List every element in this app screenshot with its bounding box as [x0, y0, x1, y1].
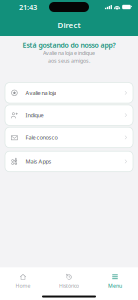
button[interactable]: Indique [5, 105, 133, 125]
staticText: 21:43 [19, 2, 37, 12]
staticText: Menu [108, 282, 122, 289]
staticText: Fale conosco [25, 134, 57, 141]
button[interactable]: Home [0, 273, 46, 289]
staticText: Mais Apps [25, 158, 51, 165]
button[interactable]: Histórico [46, 273, 92, 289]
staticText: Home [15, 282, 30, 289]
staticText: Avalie na loja [25, 89, 56, 97]
button[interactable]: Fale conosco [5, 127, 133, 148]
button[interactable]: Avalie na loja [5, 83, 133, 103]
staticText: Histórico [59, 282, 79, 289]
button[interactable]: Menu [92, 273, 138, 289]
staticText: Está gostando do nosso app? [22, 40, 115, 50]
button[interactable]: Mais Apps [5, 151, 133, 172]
staticText: Direct [57, 20, 80, 30]
staticText: Indique [25, 111, 43, 119]
staticText: Avalie na loja e indique [43, 49, 95, 57]
staticText: aos seus amigos. [48, 57, 90, 64]
